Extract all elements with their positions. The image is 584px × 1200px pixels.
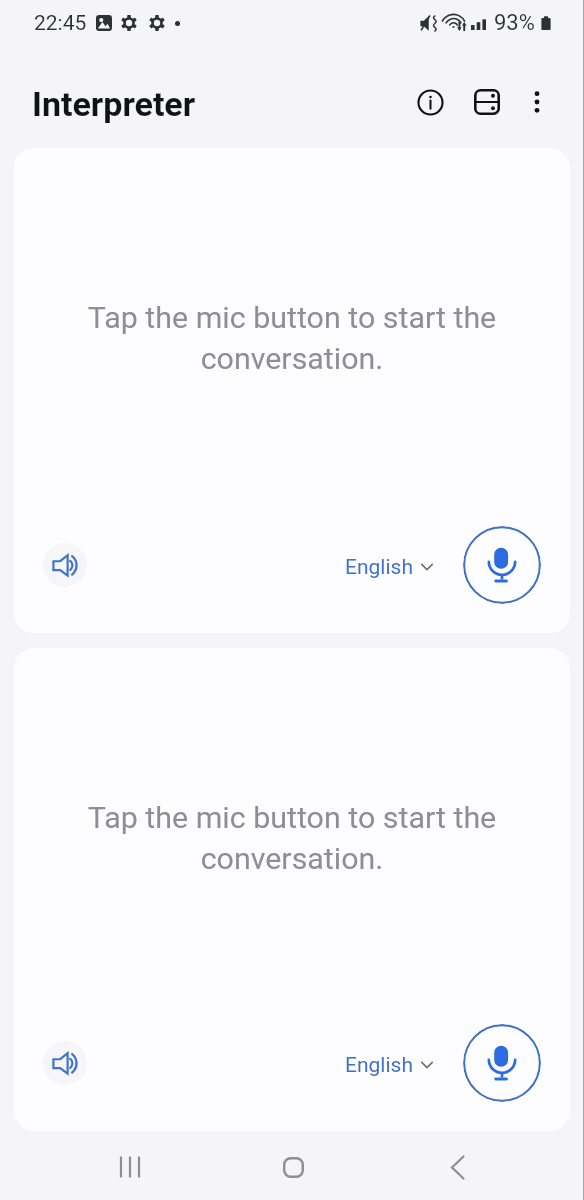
button[interactable]: Microphone [463,526,541,604]
button[interactable]: English [345,547,433,588]
staticText: 93% [494,10,535,36]
staticText: Tap the mic button to start the conversa… [54,300,530,376]
staticText: English [345,1053,413,1078]
staticText: Tap the mic button to start the conversa… [54,800,530,876]
button[interactable]: Split screen [463,78,511,126]
button[interactable]: Speaker [43,1041,87,1085]
staticText: English [345,555,413,580]
button[interactable]: More options [513,78,561,126]
button[interactable]: English [345,1045,433,1086]
button[interactable]: Microphone [463,1024,541,1102]
button[interactable]: Speaker [43,543,87,587]
button[interactable]: Info [406,78,454,126]
staticText: Interpreter [32,84,196,124]
button[interactable]: Back [423,1133,491,1200]
button[interactable]: Recents [96,1133,164,1200]
button[interactable]: Home [259,1133,327,1200]
staticText: 22:45 [34,11,87,36]
